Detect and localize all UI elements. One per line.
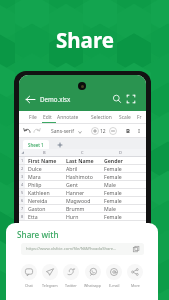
staticText: Whatsapp: [84, 283, 102, 288]
button[interactable]: Sans-serif: [51, 128, 82, 135]
staticText: I: [138, 127, 141, 135]
staticText: D: [119, 150, 122, 155]
staticText: Hurn: [66, 213, 79, 220]
staticText: Dulce: [28, 165, 42, 172]
staticText: 8: [21, 214, 24, 219]
button[interactable]: Search: [112, 94, 122, 104]
button[interactable]: Add sheet: [55, 140, 64, 149]
staticText: Fr: [137, 114, 142, 121]
staticText: Female: [104, 173, 122, 180]
staticText: Etta: [28, 213, 38, 220]
button[interactable]: Annotate: [57, 111, 79, 124]
staticText: Abril: [66, 165, 78, 172]
staticText: Gender: [104, 157, 123, 164]
button[interactable]: B: [123, 126, 133, 136]
staticText: Scale: [119, 114, 131, 121]
button[interactable]: Selection: [91, 111, 112, 124]
button[interactable]: Chat: [18, 264, 40, 288]
button[interactable]: https://www.xlsfcie.com/file/NfAYhoadaSh…: [21, 243, 144, 255]
button[interactable]: Edit: [43, 111, 52, 124]
button[interactable]: Increase font size: [91, 127, 99, 135]
staticText: Telegram: [42, 283, 58, 288]
staticText: Twitter: [65, 283, 77, 288]
staticText: Annotate: [57, 114, 79, 121]
staticText: B: [126, 127, 130, 135]
staticText: Demo.xlsx: [40, 95, 71, 103]
staticText: 2: [21, 166, 24, 171]
staticText: Edit: [43, 114, 52, 121]
staticText: Gaston: [28, 205, 46, 212]
button[interactable]: E-mail: [103, 264, 125, 288]
staticText: C: [81, 150, 84, 155]
staticText: File: [29, 114, 37, 121]
staticText: 4: [21, 182, 24, 187]
staticText: Share with: [17, 229, 59, 240]
staticText: Philip: [28, 181, 42, 188]
staticText: Hanner: [66, 189, 85, 196]
staticText: Female: [104, 189, 122, 196]
staticText: 5: [21, 190, 24, 195]
staticText: 12: [100, 128, 106, 135]
staticText: Male: [104, 181, 116, 188]
staticText: Female: [104, 197, 122, 204]
staticText: 7: [21, 206, 24, 211]
staticText: Magwood: [66, 197, 91, 204]
staticText: Chat: [25, 283, 33, 288]
staticText: Male: [104, 205, 116, 212]
staticText: Last Name: [66, 157, 94, 164]
staticText: Female: [104, 165, 122, 172]
button[interactable]: Back: [25, 94, 36, 105]
button[interactable]: Copy link: [132, 245, 140, 253]
button[interactable]: Whatsapp: [82, 264, 104, 288]
button[interactable]: I: [134, 126, 144, 136]
staticText: Hashimoto: [66, 173, 93, 180]
button[interactable]: Twitter: [60, 264, 82, 288]
button[interactable]: File: [29, 111, 37, 124]
staticText: E-mail: [109, 283, 120, 288]
staticText: 1: [21, 158, 24, 163]
button[interactable]: Decrease font size: [109, 127, 117, 135]
staticText: Brumm: [66, 205, 85, 212]
button[interactable]: More: [124, 264, 146, 288]
button[interactable]: Telegram: [39, 264, 61, 288]
button[interactable]: Undo: [23, 127, 31, 135]
staticText: Kathleen: [28, 189, 50, 196]
button[interactable]: Fullscreen: [126, 94, 136, 104]
staticText: First Name: [28, 157, 57, 164]
staticText: Sans-serif: [51, 128, 74, 135]
button[interactable]: Scale: [119, 111, 131, 124]
staticText: Selection: [91, 114, 112, 121]
staticText: B: [43, 150, 46, 155]
staticText: 6: [21, 198, 24, 203]
staticText: Sheet 1: [28, 142, 44, 148]
staticText: Share: [56, 26, 114, 54]
button[interactable]: Fr: [137, 111, 142, 124]
staticText: 3: [21, 174, 24, 179]
staticText: Female: [104, 213, 122, 220]
staticText: Mara: [28, 173, 41, 180]
button[interactable]: Sheet 1: [28, 140, 44, 149]
staticText: https://www.xlsfcie.com/file/NfAYhoadaSh…: [26, 246, 117, 252]
staticText: Gent: [66, 181, 78, 188]
button[interactable]: Redo: [33, 127, 41, 135]
staticText: Nereida: [28, 197, 48, 204]
staticText: More: [131, 283, 140, 288]
